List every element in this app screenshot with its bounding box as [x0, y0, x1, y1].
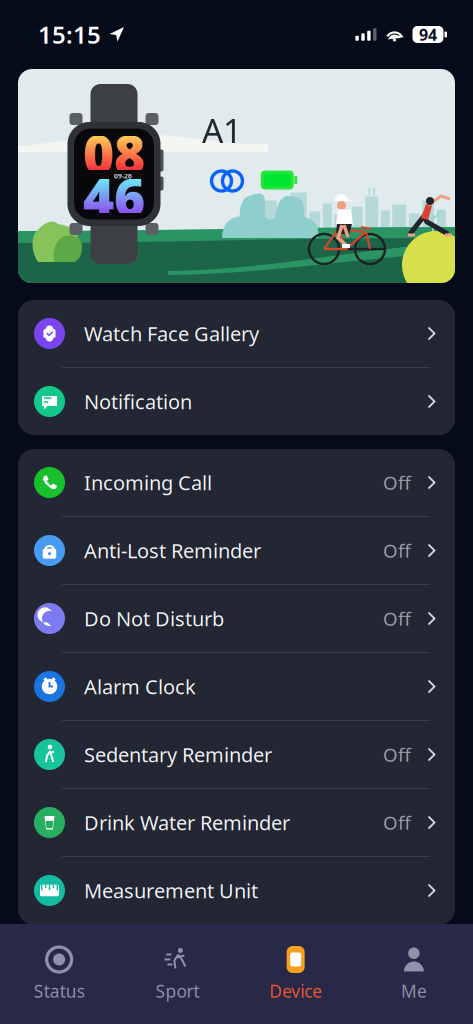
staticText: Incoming Call — [84, 469, 212, 496]
button[interactable]: Notification — [18, 368, 455, 435]
button[interactable]: Do Not Disturb — [18, 585, 455, 652]
staticText: Drink Water Reminder — [84, 809, 290, 836]
staticText: Watch Face Gallery — [84, 320, 259, 347]
staticText: 94 — [419, 24, 437, 45]
staticText: Notification — [84, 388, 192, 415]
button[interactable]: Drink Water Reminder — [18, 789, 455, 856]
staticText: A1 — [202, 108, 242, 152]
button[interactable]: Device — [236, 936, 355, 1012]
button[interactable]: Incoming Call — [18, 449, 455, 516]
staticText: Measurement Unit — [84, 877, 258, 904]
staticText: 09-26 — [114, 172, 132, 180]
staticText: Me — [401, 979, 427, 1002]
staticText: Status — [34, 979, 85, 1002]
staticText: Off — [383, 810, 411, 835]
button[interactable]: Anti-Lost Reminder — [18, 517, 455, 584]
staticText: Off — [383, 742, 411, 767]
staticText: Do Not Disturb — [84, 605, 224, 632]
button[interactable]: Status — [0, 936, 118, 1012]
button[interactable]: Alarm Clock — [18, 653, 455, 720]
staticText: Off — [383, 538, 411, 563]
staticText: Anti-Lost Reminder — [84, 537, 261, 564]
button[interactable]: Watch Face Gallery — [18, 300, 455, 367]
staticText: 15:15 — [38, 19, 101, 50]
button[interactable]: Me — [355, 936, 473, 1012]
staticText: Sedentary Reminder — [84, 741, 272, 768]
staticText: Off — [383, 606, 411, 631]
staticText: Sport — [155, 979, 199, 1002]
staticText: Off — [383, 470, 411, 495]
button[interactable]: Sedentary Reminder — [18, 721, 455, 788]
button[interactable]: Measurement Unit — [18, 857, 455, 924]
button[interactable]: Sport — [118, 936, 236, 1012]
staticText: Alarm Clock — [84, 673, 196, 700]
staticText: Device — [269, 979, 322, 1002]
